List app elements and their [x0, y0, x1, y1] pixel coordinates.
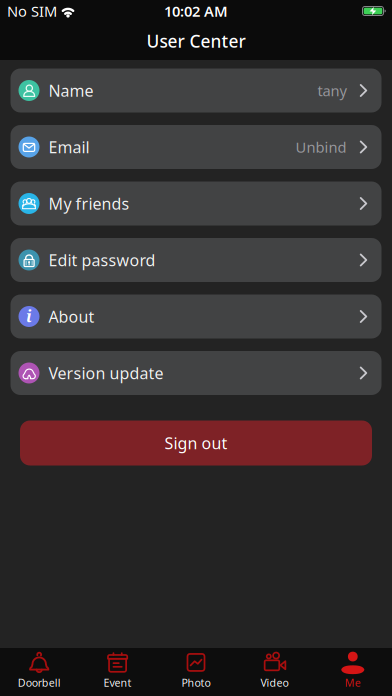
- button[interactable]: My friends: [10, 181, 381, 225]
- staticText: Sign out: [164, 432, 227, 454]
- staticText: Version update: [48, 362, 163, 384]
- button[interactable]: Version update: [10, 351, 381, 395]
- staticText: Name: [48, 80, 93, 101]
- staticText: About: [48, 306, 94, 327]
- staticText: i: [26, 305, 32, 327]
- button[interactable]: Email: [10, 125, 381, 169]
- button[interactable]: Me: [314, 648, 392, 696]
- button[interactable]: Edit password: [10, 238, 381, 282]
- staticText: Me: [345, 675, 361, 690]
- staticText: tany: [317, 81, 346, 100]
- staticText: Photo: [181, 675, 210, 690]
- button[interactable]: Doorbell: [0, 648, 78, 696]
- button[interactable]: Photo: [157, 648, 235, 696]
- button[interactable]: Sign out: [20, 420, 372, 465]
- staticText: No SIM: [7, 1, 57, 21]
- button[interactable]: Video: [235, 648, 314, 696]
- staticText: Doorbell: [18, 675, 61, 690]
- staticText: Event: [104, 675, 132, 690]
- staticText: Email: [48, 136, 89, 158]
- staticText: Unbind: [295, 137, 346, 157]
- button[interactable]: Name: [10, 68, 381, 112]
- staticText: Edit password: [48, 249, 155, 271]
- staticText: 10:02 AM: [164, 1, 228, 21]
- button[interactable]: i: [10, 294, 381, 338]
- staticText: User Center: [146, 29, 245, 52]
- staticText: Video: [260, 675, 288, 690]
- button[interactable]: Event: [78, 648, 157, 696]
- staticText: My friends: [48, 193, 129, 214]
